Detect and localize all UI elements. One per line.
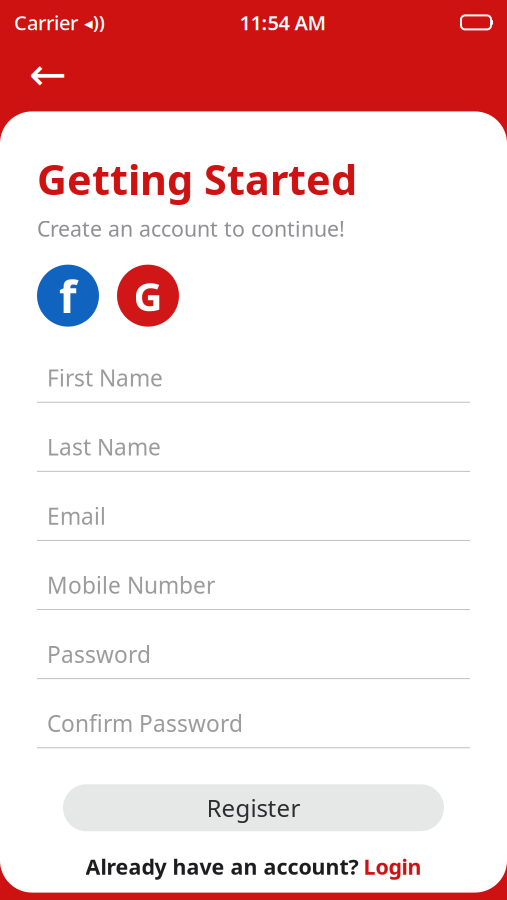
staticText: Carrier — [14, 9, 78, 36]
staticText: f — [59, 265, 77, 326]
staticText: Last Name — [47, 432, 161, 462]
button[interactable]: Already have an account? — [37, 848, 470, 884]
staticText: ◂)) — [78, 11, 105, 34]
staticText: Register — [206, 792, 300, 824]
button[interactable]: Back — [22, 50, 74, 98]
staticText: Email — [47, 501, 106, 531]
staticText: G — [133, 269, 162, 322]
staticText: Already have an account? — [85, 852, 358, 880]
staticText: 11:54 AM — [239, 9, 326, 36]
button[interactable]: Sign up with Google — [117, 265, 179, 327]
button[interactable]: Sign up with Facebook — [37, 265, 99, 327]
staticText: ← — [29, 49, 67, 100]
staticText: First Name — [47, 363, 163, 393]
button[interactable]: Register — [63, 784, 444, 831]
staticText: Create an account to continue! — [37, 214, 345, 243]
staticText: Password — [47, 639, 151, 669]
staticText: Confirm Password — [47, 708, 243, 738]
staticText: Login — [363, 852, 421, 880]
staticText: Mobile Number — [47, 570, 215, 600]
staticText: Getting Started — [37, 151, 357, 206]
